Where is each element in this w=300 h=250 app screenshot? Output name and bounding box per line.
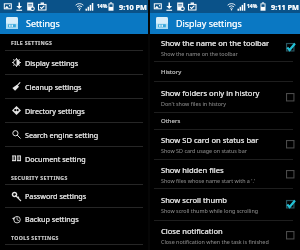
staticText: 14% <box>247 3 258 10</box>
staticText: Show scroll thumb <box>161 195 227 205</box>
staticText: Display settings <box>25 58 79 68</box>
staticText: Search engine setting <box>25 130 99 140</box>
staticText: Display settings <box>176 17 242 29</box>
staticText: Show hidden files <box>161 165 224 175</box>
staticText: History <box>161 68 182 76</box>
button[interactable]: Document setting <box>0 147 148 170</box>
button[interactable]: Show hidden files <box>150 160 300 188</box>
staticText: Show SD card on status bar <box>161 135 259 145</box>
staticText: 9:10 PM <box>119 2 147 12</box>
button[interactable]: Checked <box>286 200 295 209</box>
staticText: FILE SETTINGS <box>11 39 53 46</box>
button[interactable]: Cleanup settings <box>0 75 148 98</box>
staticText: Show SD card usage on status bar <box>161 147 247 154</box>
staticText: Show folders only in history <box>161 88 260 98</box>
button[interactable]: Search engine setting <box>0 123 148 146</box>
staticText: Document setting <box>25 154 86 164</box>
button[interactable]: Directory settings <box>0 99 148 122</box>
staticText: Directory settings <box>25 106 85 116</box>
staticText: Show scroll thumb while long scrolling <box>161 207 259 214</box>
button[interactable]: App icon <box>0 13 148 34</box>
staticText: Show files whose name start with a '.' <box>161 177 256 184</box>
staticText: Show the name on the toolbar <box>161 38 270 48</box>
button[interactable]: Show SD card on status bar <box>150 130 300 159</box>
staticText: Show the name on the toolbar <box>161 50 238 57</box>
button[interactable]: Checked <box>286 43 295 52</box>
staticText: Close notification when the task is fini… <box>161 238 269 245</box>
staticText: Don't show files in history <box>161 100 227 107</box>
staticText: Cleanup settings <box>25 82 82 92</box>
staticText: Close notification <box>161 226 223 236</box>
other: App icon <box>6 17 18 29</box>
button[interactable]: Show folders only in history <box>150 82 300 112</box>
button[interactable]: Unchecked <box>286 231 295 240</box>
staticText: Password settings <box>25 191 87 201</box>
staticText: 9:11 PM <box>271 2 299 12</box>
button[interactable]: App icon <box>150 13 300 34</box>
staticText: 14% <box>97 3 108 10</box>
other: App icon <box>156 17 168 29</box>
staticText: Backup settings <box>25 214 79 224</box>
button[interactable]: Unchecked <box>286 140 295 149</box>
button[interactable]: Unchecked <box>286 93 295 102</box>
staticText: TOOLS SETTINGS <box>11 234 59 241</box>
button[interactable]: Show scroll thumb <box>150 189 300 220</box>
button[interactable]: Backup settings <box>0 208 148 230</box>
staticText: Settings <box>26 17 60 29</box>
button[interactable]: Close notification <box>150 221 300 250</box>
button[interactable]: Display settings <box>0 51 148 74</box>
button[interactable]: Password settings <box>0 185 148 207</box>
staticText: SECURITY SETTINGS <box>11 174 68 181</box>
button[interactable]: Show the name on the toolbar <box>150 34 300 61</box>
button[interactable]: Unchecked <box>286 170 295 179</box>
staticText: Others <box>161 117 181 125</box>
